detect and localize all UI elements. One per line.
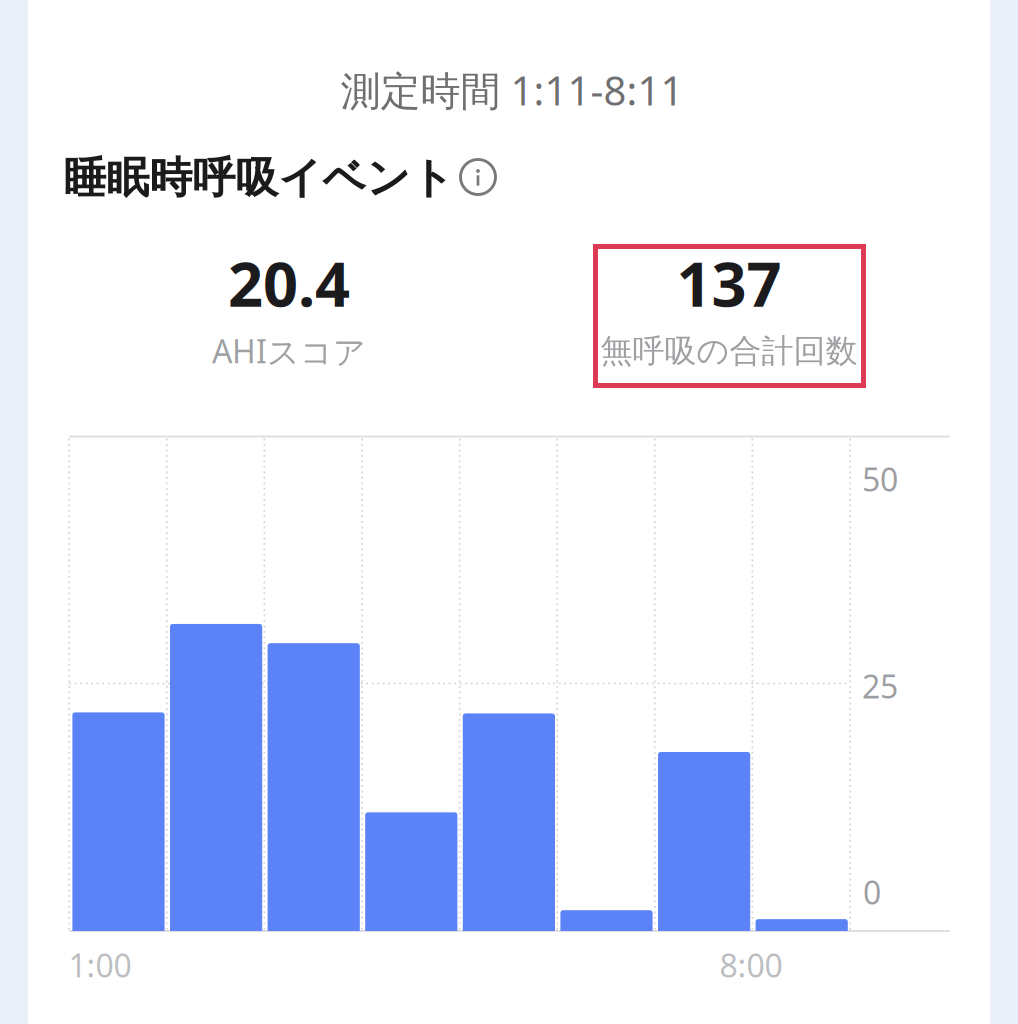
staticText: 50 — [862, 458, 898, 500]
staticText: 1:00 — [68, 944, 131, 986]
staticText: 0 — [863, 871, 881, 913]
staticText: 20.4 — [228, 242, 350, 324]
staticText: 137 — [676, 242, 781, 324]
staticText: 睡眠時呼吸イベント — [63, 152, 454, 204]
staticText: 25 — [862, 665, 898, 707]
staticText: 無呼吸の合計回数 — [600, 331, 857, 371]
staticText: 測定時間 1:11-8:11 — [340, 63, 683, 116]
staticText: 8:00 — [719, 944, 782, 986]
button[interactable]: 睡眠時呼吸イベントの詳細 — [458, 157, 498, 197]
staticText: AHIスコア — [212, 330, 366, 372]
